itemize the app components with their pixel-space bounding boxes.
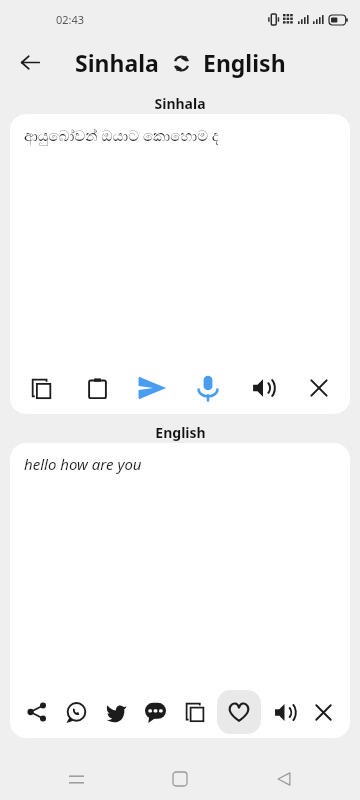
button[interactable]: English: [203, 47, 286, 78]
button[interactable]: Recents: [58, 761, 94, 797]
button[interactable]: Back: [266, 761, 302, 797]
button[interactable]: WhatsApp: [59, 695, 93, 729]
button[interactable]: Favorite: [217, 690, 261, 734]
button[interactable]: Close: [306, 695, 340, 729]
button[interactable]: Speak: [246, 371, 280, 405]
button[interactable]: Home: [162, 761, 198, 797]
button[interactable]: Sinhala: [75, 47, 159, 78]
button[interactable]: Twitter: [99, 695, 133, 729]
button[interactable]: Voice input: [191, 371, 225, 405]
staticText: English: [155, 423, 206, 442]
button[interactable]: Back: [12, 44, 48, 80]
button[interactable]: Share: [20, 695, 54, 729]
staticText: ආයුබෝවන් ඔයාට කොහොම ද: [24, 125, 219, 145]
button[interactable]: Paste: [80, 371, 114, 405]
button[interactable]: Speak: [267, 695, 301, 729]
button[interactable]: Copy: [24, 371, 58, 405]
staticText: hello how are you: [24, 454, 142, 474]
button[interactable]: SMS: [138, 695, 172, 729]
button[interactable]: Translate: [135, 371, 169, 405]
button[interactable]: Swap languages: [168, 50, 194, 76]
staticText: 02:43: [56, 12, 85, 27]
staticText: Sinhala: [154, 94, 206, 113]
button[interactable]: Clear: [302, 371, 336, 405]
button[interactable]: Copy: [178, 695, 212, 729]
